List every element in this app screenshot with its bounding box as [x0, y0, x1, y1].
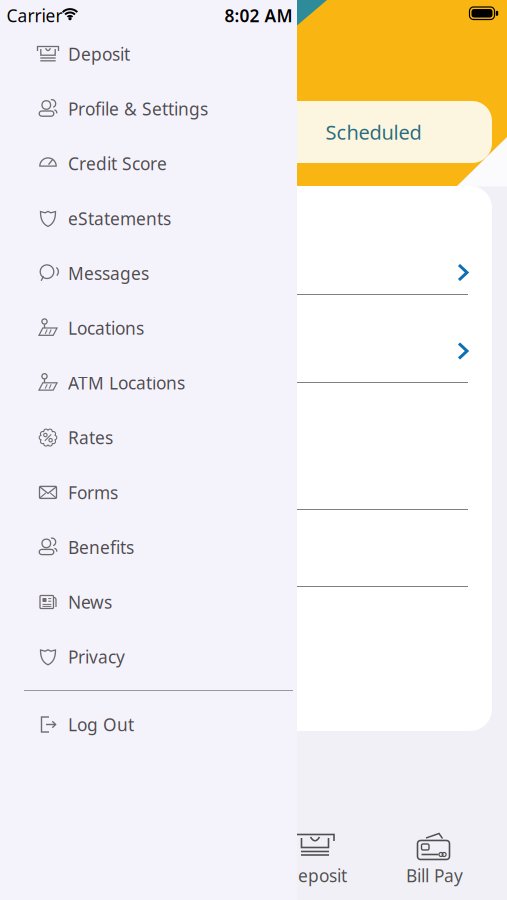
staticText: Forms — [68, 481, 118, 504]
staticText: Deposit — [285, 864, 347, 887]
staticText: Locations — [68, 316, 144, 339]
button[interactable]: Benefits — [0, 520, 297, 574]
button[interactable]: Credit Score — [0, 137, 297, 191]
staticText: Privacy — [68, 645, 125, 668]
button[interactable]: Profile & Settings — [0, 82, 297, 136]
button[interactable]: Rates — [0, 411, 297, 465]
staticText: 8:02 AM — [224, 4, 292, 27]
button[interactable]: Open detail — [297, 319, 492, 383]
button[interactable]: Forms — [0, 465, 297, 519]
staticText: Rates — [68, 426, 113, 449]
button[interactable]: eStatements — [0, 191, 297, 245]
staticText: ATM Locations — [68, 371, 185, 394]
button[interactable]: Messages — [0, 246, 297, 300]
button[interactable]: Deposit — [0, 27, 297, 81]
staticText: Deposit — [68, 42, 130, 65]
staticText: Profile & Settings — [68, 97, 208, 120]
staticText: Log Out — [68, 713, 134, 736]
button[interactable]: Open detail — [297, 240, 492, 304]
button[interactable]: Locations — [0, 301, 297, 355]
button[interactable]: Bill Pay — [379, 826, 489, 888]
button[interactable]: News — [0, 575, 297, 629]
staticText: Benefits — [68, 536, 134, 559]
button[interactable]: Deposit — [261, 826, 371, 888]
staticText: Credit Score — [68, 152, 167, 175]
staticText: News — [68, 590, 112, 613]
staticText: Scheduled — [325, 119, 421, 145]
button[interactable]: Scheduled — [255, 101, 492, 163]
staticText: eStatements — [68, 207, 171, 230]
button[interactable]: Log Out — [0, 697, 297, 751]
button[interactable]: ATM Locations — [0, 356, 297, 410]
staticText: Messages — [68, 262, 149, 285]
staticText: Bill Pay — [406, 864, 463, 887]
staticText: Carrier — [6, 4, 62, 27]
button[interactable]: Privacy — [0, 630, 297, 684]
